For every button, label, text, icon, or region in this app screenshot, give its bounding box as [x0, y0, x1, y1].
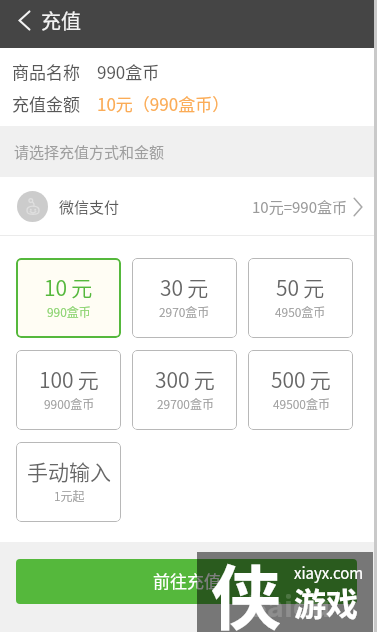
staticText: 1元起	[54, 487, 85, 504]
staticText: xiayx.com	[294, 562, 364, 584]
staticText: 侠	[211, 543, 281, 632]
button[interactable]: 10 元	[16, 258, 121, 338]
staticText: 商品名称	[12, 59, 80, 81]
staticText: 前往充值	[153, 568, 221, 593]
staticText: 充值金额	[12, 91, 80, 113]
button[interactable]: 300 元	[132, 350, 237, 430]
staticText: 4950盒币	[275, 303, 326, 320]
staticText: 10元=990盒币	[252, 196, 347, 218]
staticText: 请选择充值方式和金额	[14, 141, 165, 163]
staticText: 49500盒币	[273, 395, 330, 412]
staticText: 990盒币	[97, 59, 160, 81]
staticText: 微信支付	[59, 196, 120, 218]
button[interactable]: 前往充值	[16, 559, 357, 604]
staticText: 游戏	[294, 579, 359, 625]
staticText: 100 元	[39, 364, 99, 394]
staticText: 990盒币	[47, 303, 91, 320]
staticText: 10 元	[44, 272, 93, 302]
staticText: 手动输入	[27, 456, 111, 486]
button[interactable]: 50 元	[248, 258, 353, 338]
button[interactable]: 500 元	[248, 350, 353, 430]
staticText: 50 元	[276, 272, 325, 302]
button[interactable]: 100 元	[16, 350, 121, 430]
button[interactable]: 30 元	[132, 258, 237, 338]
staticText: 10元（990盒币）	[97, 91, 230, 113]
staticText: 30 元	[160, 272, 209, 302]
staticText: 2970盒币	[159, 303, 210, 320]
staticText: 29700盒币	[157, 395, 214, 412]
button[interactable]: Back	[0, 0, 41, 48]
staticText: 充值	[41, 6, 81, 35]
staticText: Baidu	[247, 583, 330, 625]
staticText: 500 元	[271, 364, 331, 394]
button[interactable]: 手动输入	[16, 442, 121, 522]
button[interactable]: 微信支付	[0, 177, 377, 236]
staticText: 9900盒币	[44, 395, 95, 412]
staticText: 300 元	[155, 364, 215, 394]
